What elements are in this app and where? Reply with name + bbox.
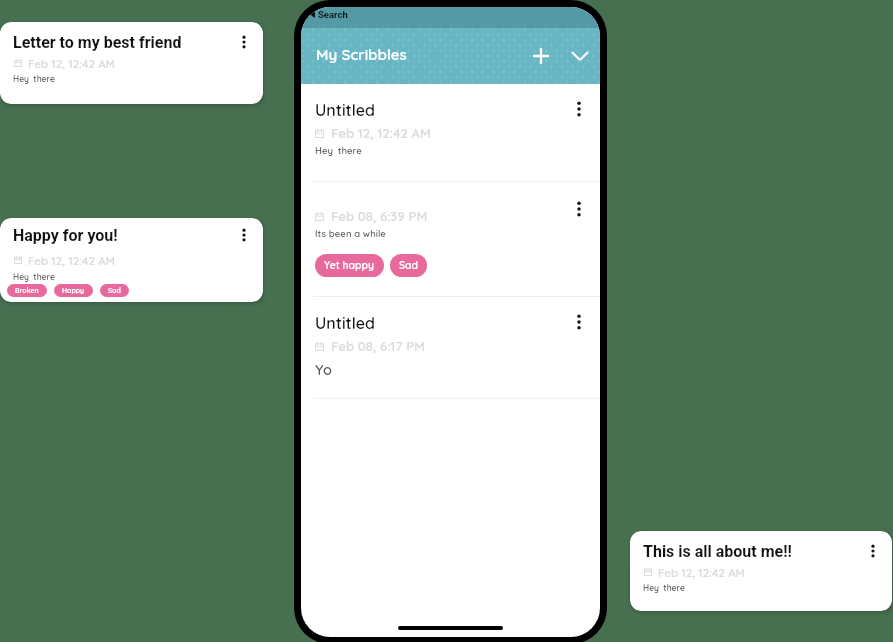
staticText: Feb 12, 12:42 AM: [658, 565, 746, 579]
button[interactable]: This is all about me!!: [630, 531, 892, 611]
staticText: Hey there: [13, 271, 56, 282]
button[interactable]: Letter to my best friend: [0, 22, 263, 104]
other: More options: [569, 312, 589, 332]
staticText: Untitled: [315, 313, 375, 333]
staticText: Untitled: [315, 100, 375, 120]
staticText: Yet happy: [324, 259, 375, 272]
staticText: This is all about me!!: [643, 542, 792, 561]
button[interactable]: Happy for you!: [0, 218, 263, 302]
staticText: Letter to my best friend: [13, 33, 182, 52]
staticText: Search: [318, 9, 348, 20]
staticText: Yo: [315, 360, 332, 378]
staticText: Hey there: [13, 73, 56, 84]
staticText: Happy for you!: [13, 226, 118, 245]
other: More options: [234, 225, 254, 245]
staticText: Sad: [108, 286, 121, 295]
button[interactable]: Untitled: [301, 84, 600, 181]
staticText: Feb 12, 12:42 AM: [331, 125, 431, 141]
staticText: Feb 12, 12:42 AM: [28, 56, 116, 70]
staticText: Feb 08, 6:39 PM: [331, 208, 428, 224]
button[interactable]: Sad: [100, 284, 129, 297]
staticText: Hey there: [643, 582, 686, 593]
staticText: Feb 12, 12:42 AM: [28, 253, 116, 267]
staticText: Broken: [15, 286, 39, 295]
other: More options: [569, 99, 589, 119]
button[interactable]: More options: [863, 541, 883, 561]
other: More options: [569, 199, 589, 219]
button[interactable]: More options: [234, 225, 254, 245]
button[interactable]: Show menu: [563, 39, 597, 73]
staticText: Happy: [62, 286, 85, 295]
button[interactable]: Add note: [524, 39, 558, 73]
button[interactable]: Sad: [390, 254, 427, 277]
button[interactable]: Yet happy: [315, 254, 384, 277]
button[interactable]: Feb 08, 6:39 PM: [301, 182, 600, 296]
staticText: Its been a while: [315, 227, 386, 239]
staticText: Sad: [399, 259, 418, 272]
staticText: Hey there: [315, 144, 362, 156]
button[interactable]: Broken: [7, 284, 47, 297]
staticText: Feb 08, 6:17 PM: [331, 338, 425, 354]
other: More options: [863, 541, 883, 561]
button[interactable]: More options: [568, 198, 590, 220]
button[interactable]: Untitled: [301, 297, 600, 398]
other: More options: [234, 32, 254, 52]
button[interactable]: More options: [568, 311, 590, 333]
staticText: My Scribbles: [316, 45, 407, 64]
button[interactable]: More options: [568, 98, 590, 120]
button[interactable]: Happy: [54, 284, 93, 297]
button[interactable]: More options: [234, 32, 254, 52]
